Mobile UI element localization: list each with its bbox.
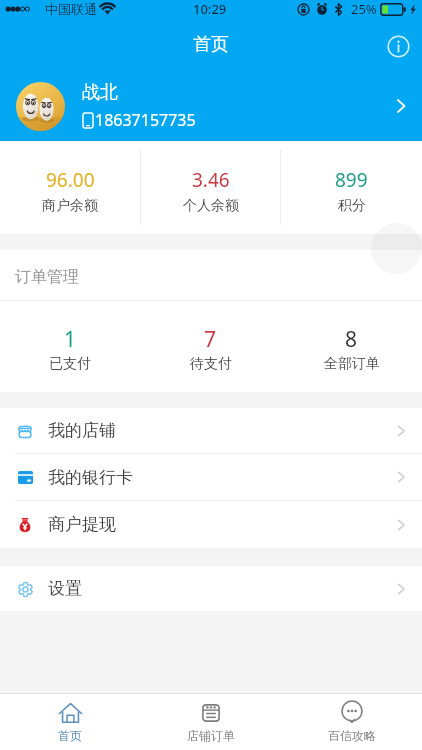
staticText: 战北	[82, 81, 118, 104]
button[interactable]: 商户提现	[0, 501, 422, 548]
staticText: 个人余额	[183, 197, 239, 215]
button[interactable]: 战北	[0, 75, 422, 137]
staticText: 7	[204, 325, 217, 354]
staticText: 待支付	[190, 355, 232, 373]
staticText: 中国联通	[45, 1, 97, 17]
staticText: 8	[345, 325, 358, 354]
staticText: 我的银行卡	[48, 467, 133, 488]
button[interactable]: 7	[140, 321, 281, 373]
staticText: 首页	[58, 728, 82, 743]
staticText: 百信攻略	[328, 728, 376, 743]
staticText: 96.00	[46, 167, 95, 193]
button[interactable]: 1	[0, 321, 140, 373]
staticText: 积分	[338, 197, 366, 215]
staticText: 订单管理	[15, 267, 79, 287]
button[interactable]: 百信攻略	[281, 694, 422, 743]
staticText: 全部订单	[324, 355, 380, 373]
button[interactable]: 8	[281, 321, 422, 373]
staticText: 25%	[351, 0, 377, 18]
button[interactable]: 首页	[0, 694, 140, 743]
button[interactable]: Info	[385, 33, 411, 59]
staticText: 18637157735	[95, 109, 196, 131]
button[interactable]: 设置	[0, 566, 422, 611]
button[interactable]: 我的银行卡	[0, 454, 422, 500]
staticText: 899	[335, 167, 368, 193]
button[interactable]: Assistive touch	[371, 223, 422, 274]
staticText: 商户余额	[42, 197, 98, 215]
staticText: 已支付	[49, 355, 91, 373]
button[interactable]: 3.46	[141, 160, 280, 215]
staticText: 商户提现	[48, 514, 116, 535]
staticText: 3.46	[192, 167, 230, 193]
button[interactable]: 899	[281, 160, 422, 215]
staticText: 设置	[48, 578, 82, 599]
staticText: 1	[64, 325, 77, 354]
staticText: 店铺订单	[187, 728, 235, 743]
staticText: 首页	[193, 33, 229, 56]
staticText: 我的店铺	[48, 420, 116, 441]
button[interactable]: 店铺订单	[140, 694, 281, 743]
button[interactable]: 96.00	[0, 160, 140, 215]
button[interactable]: 我的店铺	[0, 408, 422, 453]
staticText: 10:29	[193, 0, 227, 18]
